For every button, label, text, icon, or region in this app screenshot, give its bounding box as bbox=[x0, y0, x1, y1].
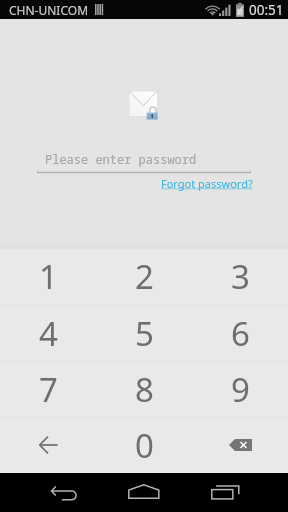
other: Delete bbox=[229, 439, 252, 451]
button[interactable]: Back bbox=[51, 485, 77, 501]
staticText: 6 bbox=[231, 311, 250, 356]
button[interactable]: 6 bbox=[192, 305, 288, 361]
staticText: 7 bbox=[39, 367, 58, 412]
staticText: 2 bbox=[135, 254, 154, 299]
staticText: Forgot password? bbox=[161, 176, 253, 191]
button[interactable]: 0 bbox=[96, 417, 192, 473]
button[interactable]: Delete bbox=[192, 417, 288, 473]
other: Back bbox=[39, 436, 58, 454]
staticText: 3 bbox=[231, 254, 250, 299]
staticText: CHN-UNICOM bbox=[9, 2, 89, 18]
staticText: 00:51 bbox=[249, 1, 284, 19]
button[interactable]: 7 bbox=[0, 361, 96, 417]
button[interactable]: 4 bbox=[0, 305, 96, 361]
button[interactable]: 3 bbox=[192, 248, 288, 305]
staticText: Please enter password bbox=[45, 151, 197, 167]
button[interactable]: 9 bbox=[192, 361, 288, 417]
button[interactable]: Please enter password bbox=[45, 151, 197, 167]
button[interactable]: Back bbox=[0, 417, 96, 473]
staticText: 1 bbox=[39, 254, 58, 299]
button[interactable]: 2 bbox=[96, 248, 192, 305]
button[interactable]: Home bbox=[128, 484, 160, 500]
staticText: 9 bbox=[231, 367, 250, 412]
button[interactable]: Recent apps bbox=[211, 485, 240, 500]
button[interactable]: 1 bbox=[0, 248, 96, 305]
button[interactable]: 8 bbox=[96, 361, 192, 417]
button[interactable]: 5 bbox=[96, 305, 192, 361]
staticText: 4 bbox=[39, 311, 58, 356]
button[interactable]: Forgot password? bbox=[161, 176, 253, 191]
staticText: 8 bbox=[135, 367, 154, 412]
staticText: 0 bbox=[135, 423, 154, 468]
staticText: 5 bbox=[135, 311, 154, 356]
